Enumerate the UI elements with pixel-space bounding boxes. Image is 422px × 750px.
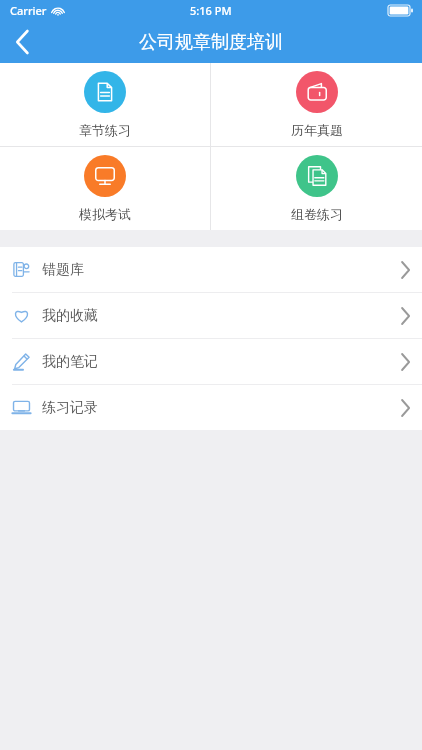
button[interactable]: 错题库: [0, 247, 422, 292]
button[interactable]: 我的收藏: [0, 293, 422, 338]
staticText: 公司规章制度培训: [139, 31, 283, 54]
staticText: 我的笔记: [42, 353, 98, 371]
button[interactable]: 练习记录: [0, 385, 422, 430]
staticText: 章节练习: [79, 122, 131, 138]
staticText: 我的收藏: [42, 307, 98, 325]
staticText: 组卷练习: [291, 206, 343, 222]
staticText: 历年真题: [291, 122, 343, 138]
staticText: 模拟考试: [79, 206, 131, 222]
button[interactable]: 我的笔记: [0, 339, 422, 384]
button[interactable]: 组卷练习: [211, 147, 422, 230]
button[interactable]: 章节练习: [0, 63, 210, 146]
staticText: 练习记录: [42, 399, 98, 417]
staticText: 错题库: [42, 261, 84, 279]
button[interactable]: Back: [0, 21, 44, 63]
staticText: Carrier: [10, 3, 47, 18]
button[interactable]: 历年真题: [211, 63, 422, 146]
button[interactable]: 模拟考试: [0, 147, 210, 230]
staticText: 5:16 PM: [190, 3, 232, 18]
